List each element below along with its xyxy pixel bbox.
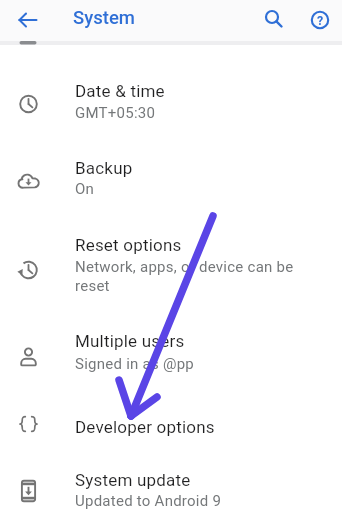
button[interactable]: Date & time: [0, 76, 342, 128]
button[interactable]: Developer options: [0, 408, 342, 452]
staticText: Updated to Android 9: [75, 492, 222, 510]
staticText: reset: [75, 277, 110, 295]
staticText: Developer options: [75, 417, 215, 437]
button[interactable]: Reset options: [0, 226, 342, 294]
button[interactable]: [257, 3, 289, 35]
button[interactable]: Multiple users: [0, 326, 342, 378]
button[interactable]: System update: [0, 468, 342, 520]
button[interactable]: [12, 4, 44, 36]
staticText: Date & time: [75, 81, 165, 101]
staticText: Network, apps, or device can be: [75, 258, 294, 276]
staticText: Backup: [75, 158, 133, 178]
staticText: ?: [317, 13, 324, 28]
staticText: Signed in as @pp: [75, 355, 194, 373]
staticText: System: [73, 7, 135, 29]
staticText: Multiple users: [75, 331, 185, 351]
button[interactable]: Backup: [0, 152, 342, 204]
staticText: On: [75, 180, 95, 198]
staticText: GMT+05:30: [75, 104, 156, 122]
staticText: System update: [75, 470, 191, 490]
staticText: Reset options: [75, 235, 182, 255]
button[interactable]: ?: [303, 3, 337, 37]
